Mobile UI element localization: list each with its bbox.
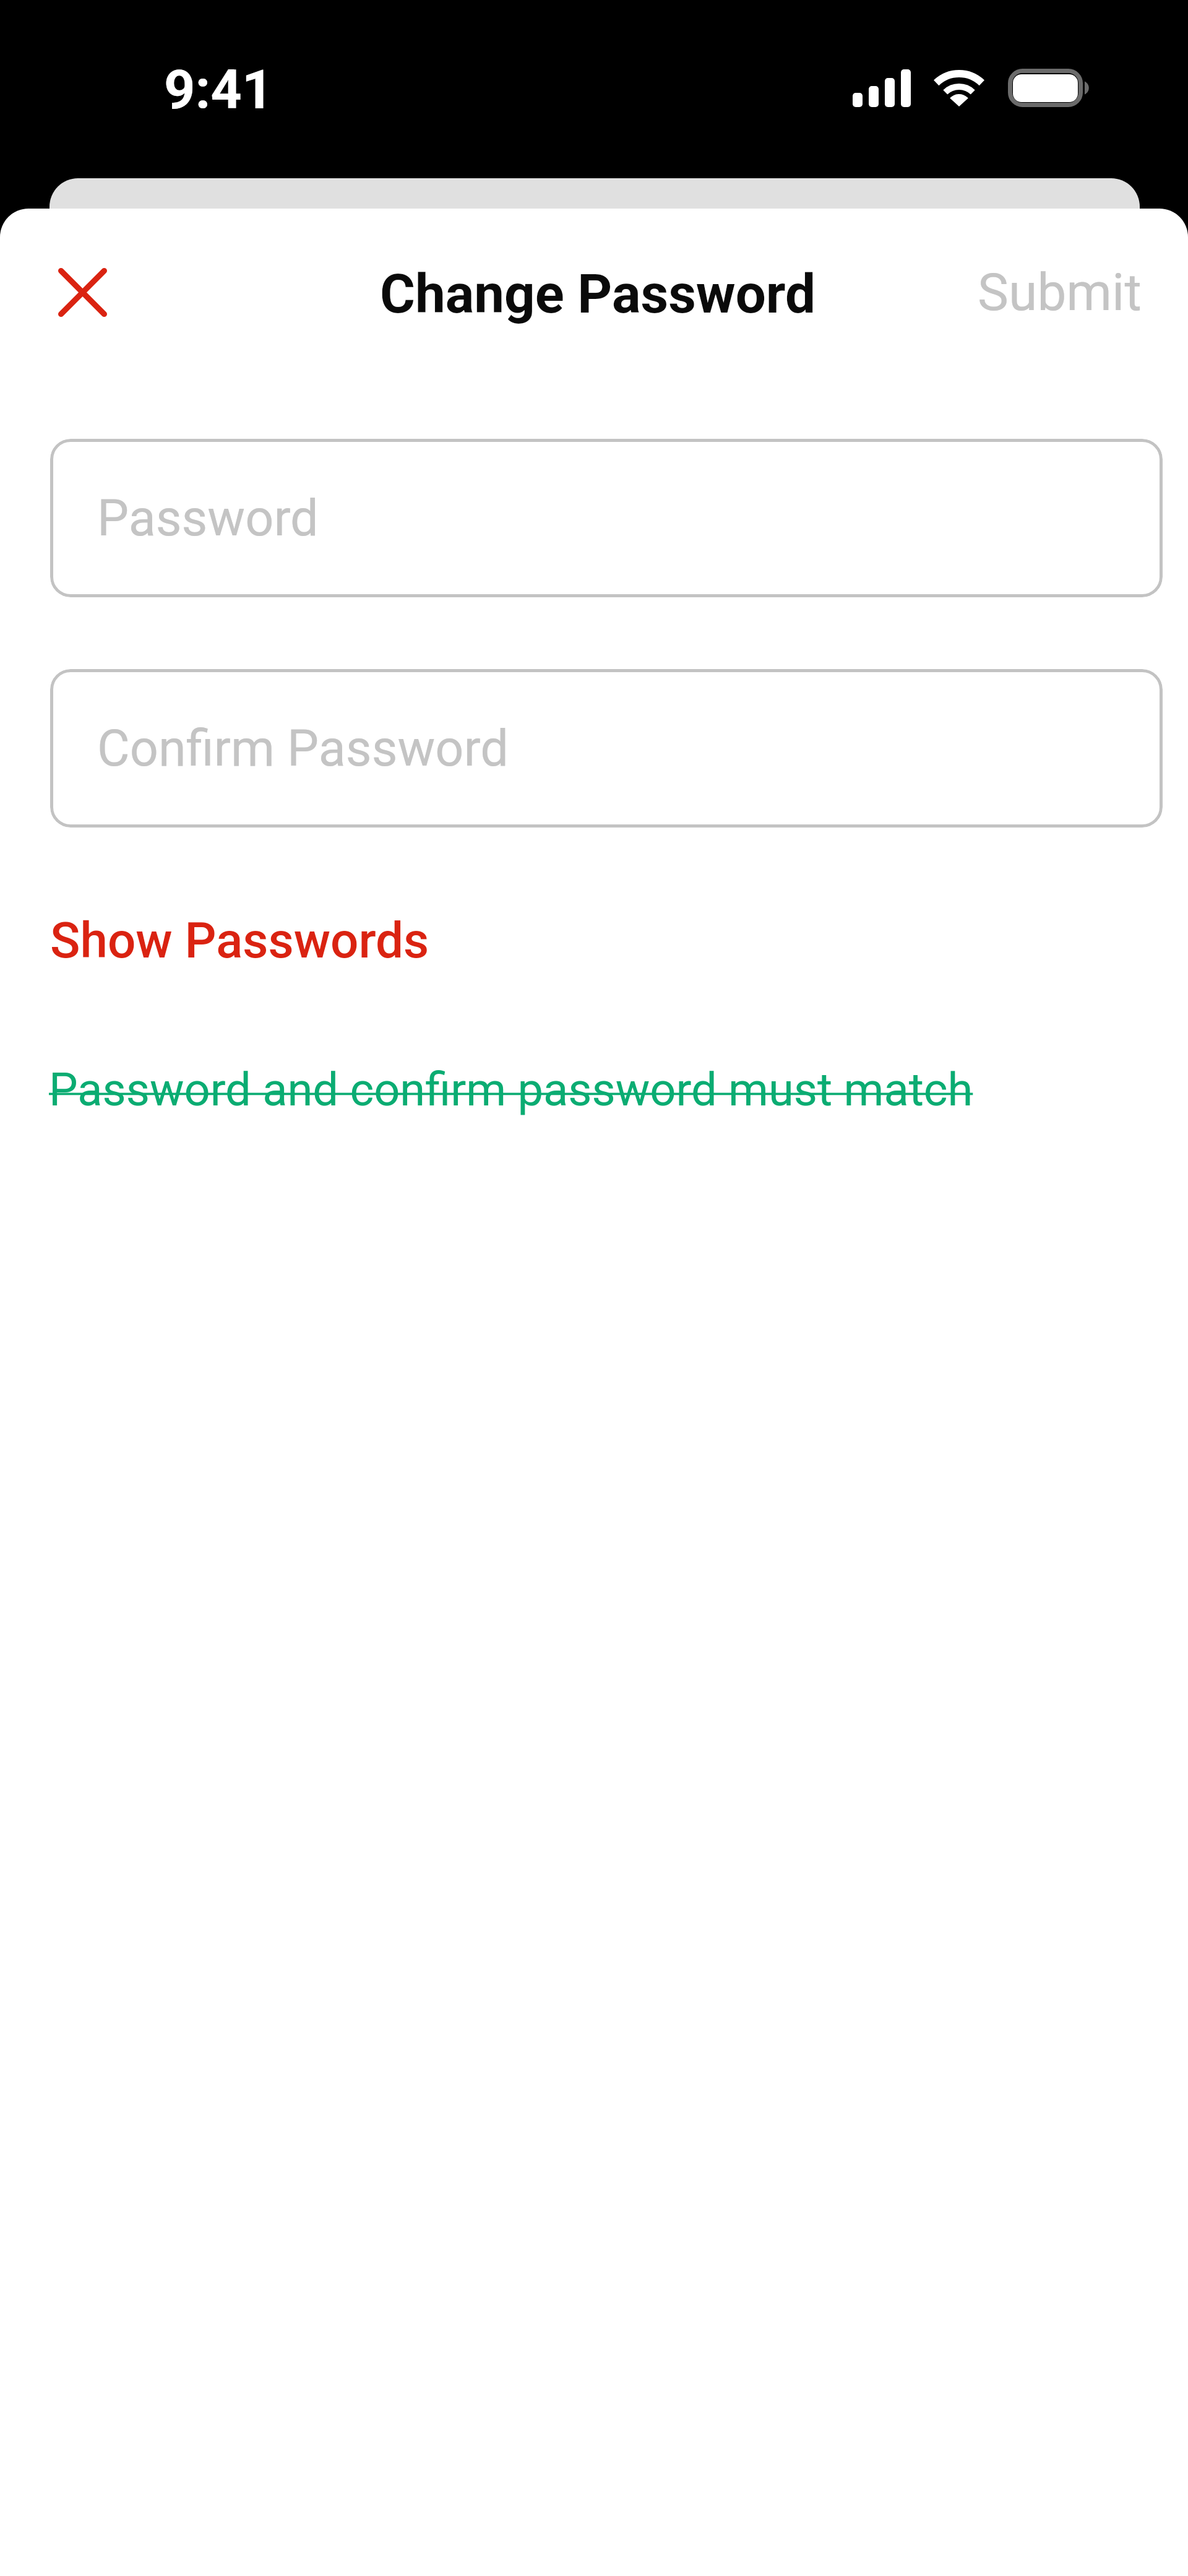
button[interactable]: Show Passwords <box>41 903 438 979</box>
button[interactable]: Password <box>50 439 1163 597</box>
staticText: Password and confirm password must match <box>49 1063 973 1117</box>
button[interactable]: Confirm Password <box>50 669 1163 828</box>
other: Wi-Fi <box>932 67 986 109</box>
staticText: 9:41 <box>164 58 273 121</box>
staticText: Submit <box>978 262 1142 322</box>
button[interactable]: Submit <box>950 240 1169 345</box>
button[interactable]: Close <box>35 245 129 339</box>
staticText: Password <box>97 489 319 548</box>
other: Battery full <box>1008 69 1095 108</box>
staticText: Confirm Password <box>97 719 509 778</box>
staticText: Show Passwords <box>50 912 429 970</box>
staticText: Change Password <box>380 262 816 326</box>
other: Cellular signal <box>853 69 911 107</box>
